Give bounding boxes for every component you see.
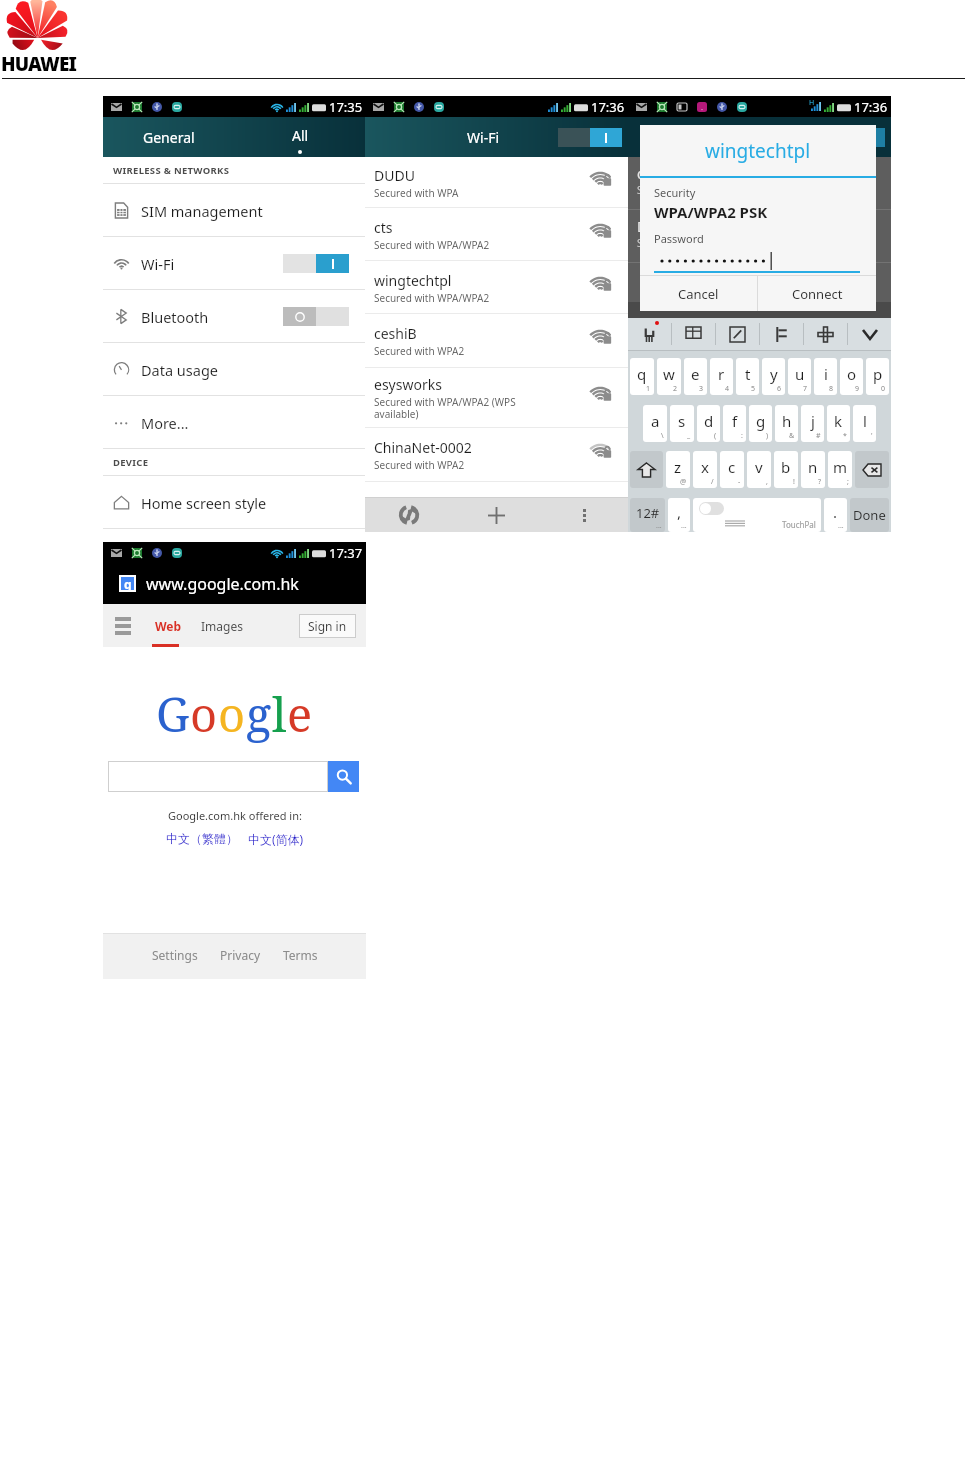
button[interactable]: Numbers: [630, 498, 665, 532]
button[interactable]: esysworks: [365, 368, 628, 428]
button[interactable]: Data usage: [103, 343, 366, 396]
button[interactable]: wingtechtpl: [365, 261, 628, 314]
staticText: 8: [829, 384, 834, 394]
staticText: G: [156, 682, 190, 746]
staticText: TouchPal: [782, 519, 816, 530]
staticText: Home screen style: [141, 493, 267, 513]
button[interactable]: Handwriting: [628, 318, 671, 350]
button[interactable]: Search: [328, 761, 359, 792]
button[interactable]: Home screen style: [103, 476, 366, 529]
staticText: @: [680, 477, 687, 487]
button[interactable]: h: [775, 405, 798, 442]
button[interactable]: DUDU: [365, 157, 628, 208]
button[interactable]: s: [670, 405, 694, 442]
button[interactable]: Sign in: [299, 614, 356, 638]
staticText: z: [674, 457, 682, 477]
staticText: o: [190, 682, 218, 746]
staticText: w: [663, 364, 675, 384]
button[interactable]: r: [710, 358, 733, 395]
button[interactable]: Bluetooth: [103, 290, 366, 343]
button[interactable]: [558, 128, 622, 147]
button[interactable]: d: [697, 405, 720, 442]
button[interactable]: n: [801, 451, 825, 488]
button[interactable]: z: [666, 451, 690, 488]
button[interactable]: 中文(简体): [248, 831, 304, 847]
button[interactable]: f: [723, 405, 746, 442]
button[interactable]: Backspace: [855, 451, 889, 488]
button[interactable]: Edit: [716, 318, 759, 350]
staticText: Password: [654, 231, 704, 246]
staticText: General: [143, 128, 195, 147]
staticText: 4: [725, 384, 730, 394]
staticText: v: [755, 457, 763, 477]
button[interactable]: t: [736, 358, 759, 395]
staticText: n: [808, 457, 818, 477]
button[interactable]: y: [762, 358, 785, 395]
button[interactable]: Web: [155, 618, 182, 634]
staticText: .: [833, 502, 838, 522]
staticText: ,: [677, 502, 682, 522]
staticText: 6: [777, 384, 782, 394]
button[interactable]: More: [804, 318, 847, 350]
button[interactable]: Space: [693, 498, 821, 532]
button[interactable]: i: [814, 358, 837, 395]
button[interactable]: c: [720, 451, 744, 488]
button[interactable]: Add network: [452, 498, 540, 532]
button[interactable]: ,: [668, 498, 690, 532]
button[interactable]: b: [774, 451, 798, 488]
button[interactable]: m: [828, 451, 852, 488]
button[interactable]: ceshiB: [365, 314, 628, 368]
staticText: q: [637, 364, 647, 384]
button[interactable]: j: [801, 405, 824, 442]
button[interactable]: Images: [201, 618, 243, 634]
button[interactable]: General: [103, 117, 234, 157]
button[interactable]: Done: [850, 498, 889, 532]
staticText: s: [678, 411, 686, 431]
button[interactable]: w: [657, 358, 681, 395]
button[interactable]: k: [827, 405, 850, 442]
button[interactable]: Menu: [115, 617, 131, 635]
button[interactable]: Terms: [283, 947, 318, 963]
button[interactable]: l: [853, 405, 876, 442]
staticText: HUAWEI: [1, 51, 76, 77]
button[interactable]: More options: [540, 498, 628, 532]
button[interactable]: .: [824, 498, 847, 532]
staticText: /: [711, 477, 714, 487]
button[interactable]: Language: [672, 318, 715, 350]
button[interactable]: x: [693, 451, 717, 488]
staticText: Security: [654, 185, 696, 200]
button[interactable]: Clipboard: [760, 318, 803, 350]
staticText: o: [218, 682, 246, 746]
button[interactable]: Refresh: [365, 498, 452, 532]
button[interactable]: u: [788, 358, 811, 395]
staticText: &: [789, 431, 795, 441]
staticText: u: [795, 364, 805, 384]
button[interactable]: cts: [365, 208, 628, 261]
button[interactable]: All: [234, 117, 366, 157]
button[interactable]: e: [684, 358, 707, 395]
button[interactable]: More...: [103, 396, 366, 449]
button[interactable]: v: [747, 451, 771, 488]
button[interactable]: 中文（繁體）: [166, 831, 238, 846]
button[interactable]: p: [866, 358, 889, 395]
button[interactable]: Privacy: [220, 947, 261, 963]
button[interactable]: ChinaNet-0002: [365, 428, 628, 482]
staticText: wingtechtpl: [705, 138, 811, 164]
button[interactable]: q: [630, 358, 654, 395]
button[interactable]: SIM management: [103, 184, 366, 237]
button[interactable]: Cancel: [640, 276, 757, 311]
button[interactable]: Connect: [758, 276, 876, 311]
staticText: DEVICE: [113, 456, 149, 469]
staticText: h: [782, 411, 792, 431]
button[interactable]: g: [749, 405, 772, 442]
button[interactable]: Settings: [152, 947, 198, 963]
staticText: WIRELESS & NETWORKS: [113, 164, 230, 177]
button[interactable]: Hide keyboard: [848, 318, 891, 350]
button[interactable]: Shift: [630, 451, 663, 488]
button[interactable]: a: [643, 405, 667, 442]
staticText: g: [246, 682, 272, 746]
staticText: H: [809, 98, 815, 108]
button[interactable]: Wi-Fi: [103, 237, 366, 290]
button[interactable]: o: [840, 358, 863, 395]
button[interactable]: [108, 761, 328, 792]
